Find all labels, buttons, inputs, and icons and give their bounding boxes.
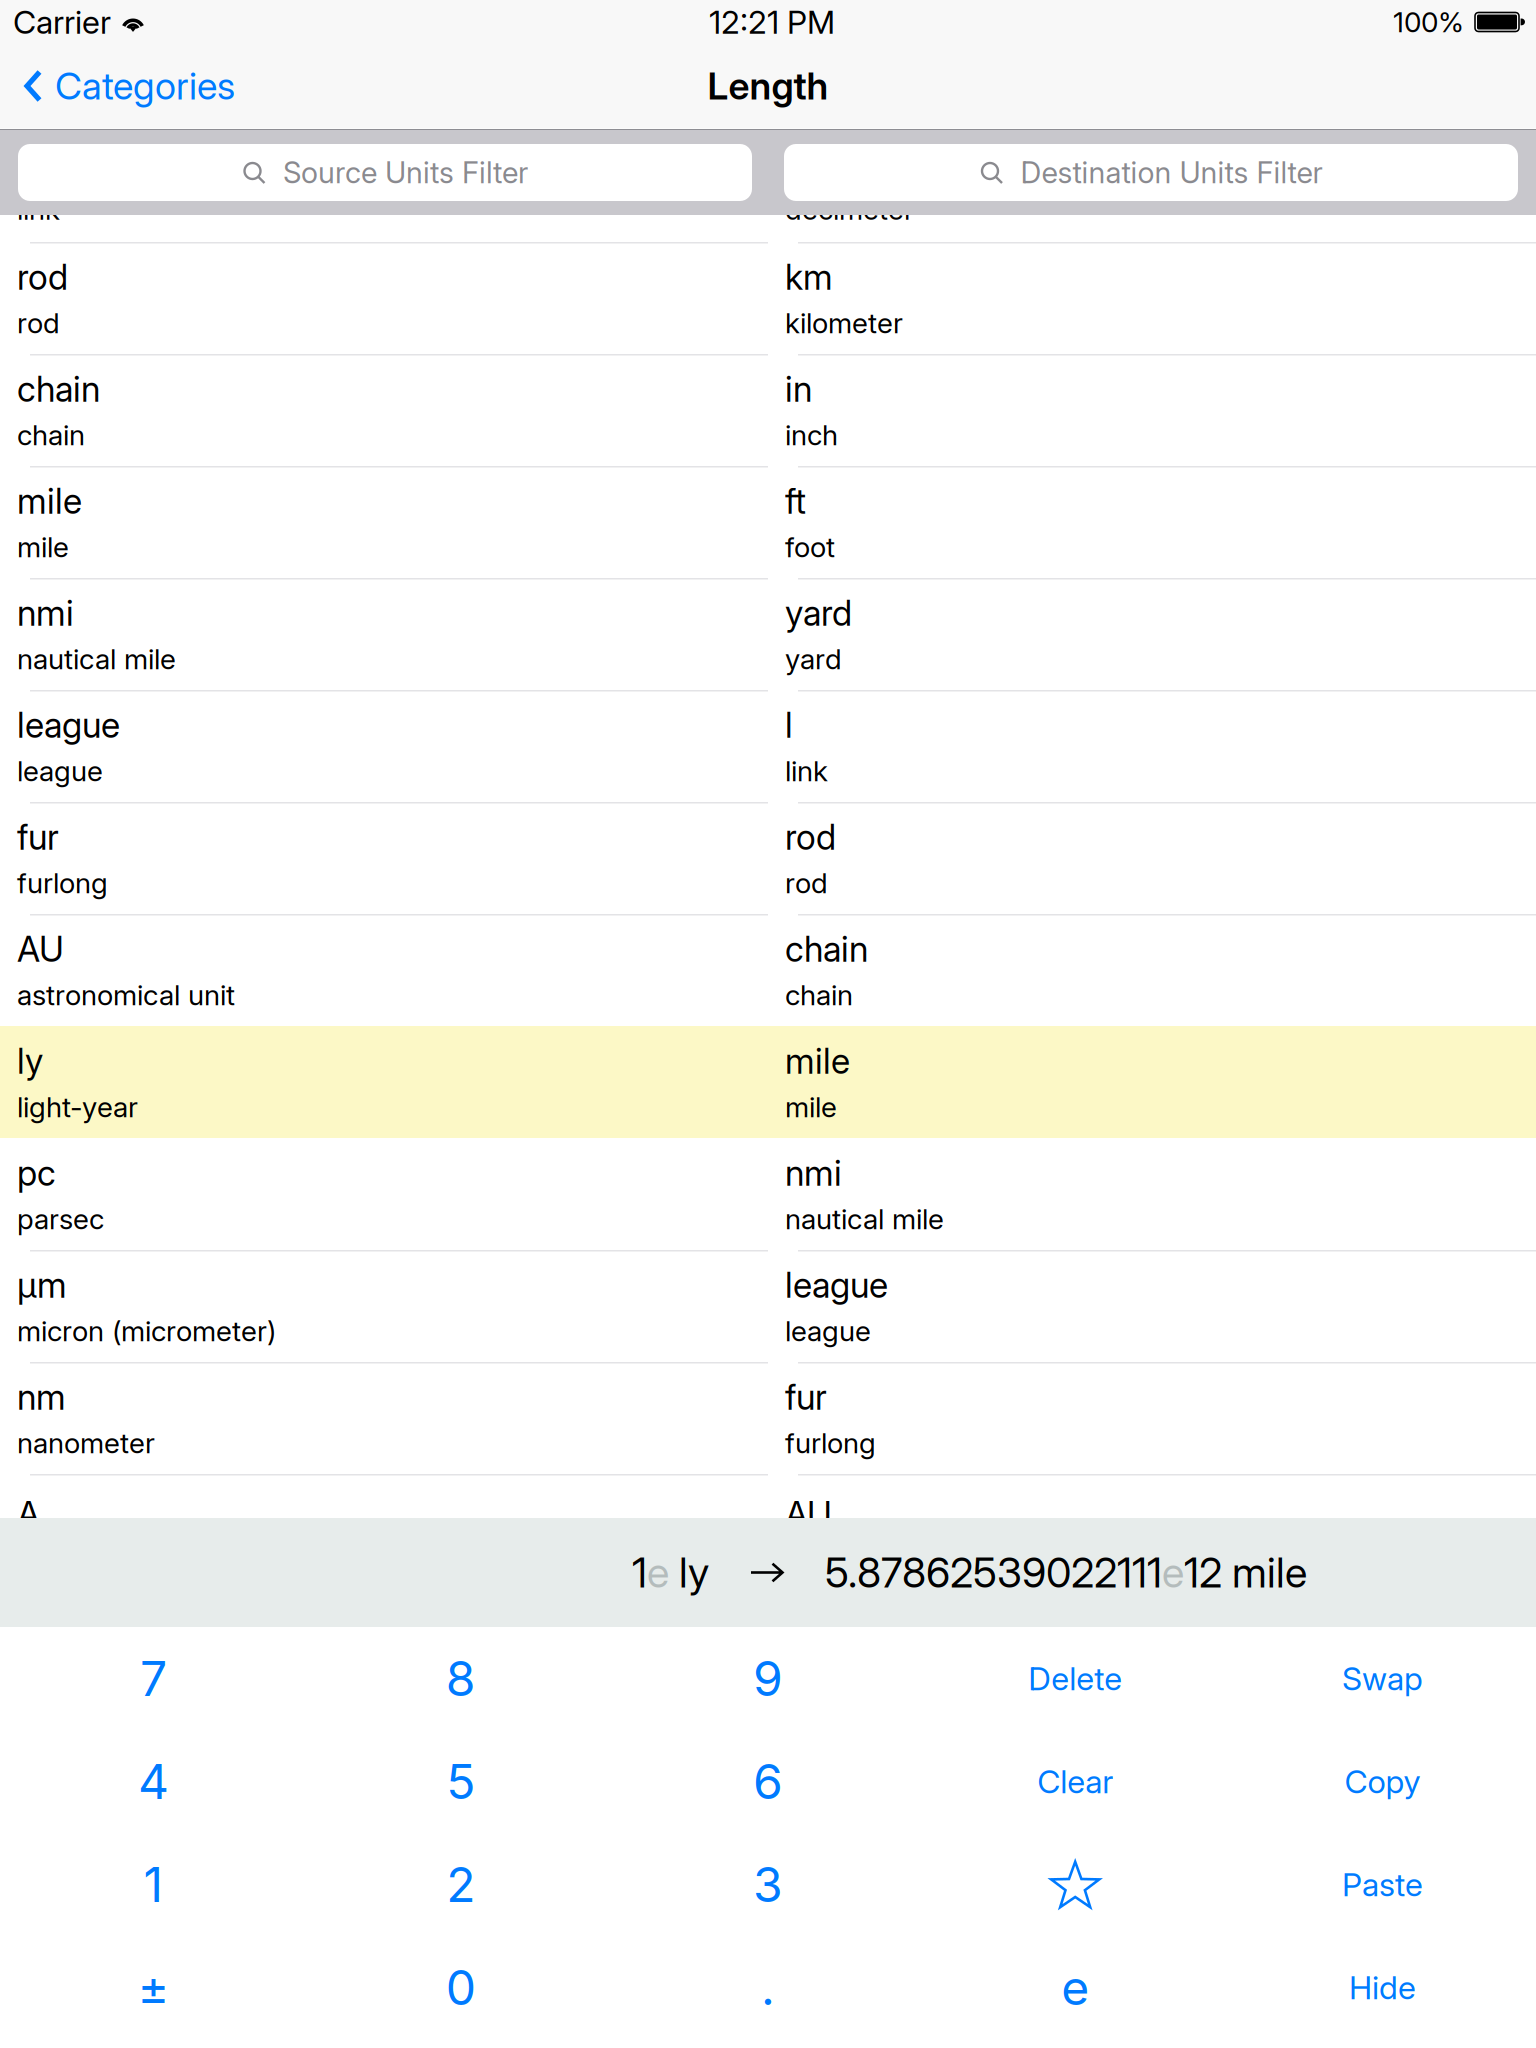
staticText: e: [1162, 1547, 1184, 1597]
button[interactable]: chain: [0, 354, 768, 466]
button[interactable]: e: [922, 1936, 1229, 2039]
staticText: .: [761, 1958, 775, 2017]
button[interactable]: rod: [768, 802, 1536, 914]
staticText: league: [17, 704, 120, 746]
button[interactable]: nmi: [768, 1138, 1536, 1250]
staticText: 8: [446, 1649, 476, 1708]
staticText: fur: [17, 816, 59, 858]
button[interactable]: mile: [768, 1026, 1536, 1138]
staticText: Delete: [1028, 1659, 1122, 1698]
button[interactable]: 0: [307, 1936, 614, 2039]
button[interactable]: ft: [768, 466, 1536, 578]
button[interactable]: nm: [0, 1362, 768, 1474]
staticText: 9: [753, 1649, 783, 1708]
staticText: kilometer: [785, 306, 903, 340]
staticText: inch: [785, 418, 838, 452]
button[interactable]: 5: [307, 1730, 614, 1833]
staticText: nautical mile: [785, 1202, 944, 1236]
staticText: Clear: [1037, 1762, 1113, 1801]
button[interactable]: Destination Units Filter: [784, 144, 1518, 201]
staticText: ly: [669, 1547, 709, 1597]
staticText: rod: [17, 256, 68, 298]
staticText: rod: [17, 306, 60, 340]
staticText: parsec: [17, 1202, 104, 1236]
staticText: 100%: [1393, 5, 1464, 39]
button[interactable]: .: [614, 1936, 922, 2039]
staticText: furlong: [785, 1426, 876, 1460]
staticText: ly: [17, 1040, 43, 1082]
staticText: decimeter: [785, 193, 914, 226]
button[interactable]: nmi: [0, 578, 768, 690]
button[interactable]: 8: [307, 1627, 614, 1730]
button[interactable]: Categories: [0, 44, 249, 128]
staticText: chain: [785, 928, 868, 970]
staticText: Destination Units Filter: [1020, 155, 1322, 190]
staticText: nanometer: [17, 1426, 155, 1460]
staticText: pc: [17, 1152, 56, 1194]
button[interactable]: AU: [0, 914, 768, 1026]
staticText: Hide: [1349, 1968, 1416, 2007]
button[interactable]: µm: [0, 1250, 768, 1362]
button[interactable]: 7: [0, 1627, 307, 1730]
button[interactable]: 6: [614, 1730, 922, 1833]
staticText: furlong: [17, 866, 108, 900]
button[interactable]: 1: [0, 1833, 307, 1936]
staticText: AU: [17, 928, 64, 970]
staticText: rod: [785, 866, 828, 900]
button[interactable]: Paste: [1229, 1833, 1536, 1936]
button[interactable]: fur: [768, 1362, 1536, 1474]
staticText: nmi: [785, 1152, 842, 1194]
button[interactable]: 9: [614, 1627, 922, 1730]
button[interactable]: fur: [0, 802, 768, 914]
staticText: 5: [446, 1752, 475, 1811]
staticText: link: [785, 754, 828, 788]
button[interactable]: mile: [0, 466, 768, 578]
staticText: nmi: [17, 592, 74, 634]
staticText: Paste: [1342, 1865, 1423, 1904]
button[interactable]: yard: [768, 578, 1536, 690]
staticText: yard: [785, 642, 842, 676]
button[interactable]: Hide: [1229, 1936, 1536, 2039]
button[interactable]: Favorite: [922, 1833, 1229, 1936]
button[interactable]: 2: [307, 1833, 614, 1936]
staticText: Length: [707, 63, 828, 109]
button[interactable]: chain: [768, 914, 1536, 1026]
staticText: league: [17, 754, 103, 788]
staticText: mile: [17, 480, 82, 522]
staticText: 3: [753, 1855, 783, 1914]
staticText: nautical mile: [17, 642, 176, 676]
staticText: e: [1061, 1958, 1089, 2017]
button[interactable]: Swap: [1229, 1627, 1536, 1730]
staticText: Swap: [1342, 1659, 1423, 1698]
button[interactable]: Source Units Filter: [18, 144, 752, 201]
staticText: yard: [785, 592, 852, 634]
staticText: 5.87862539022111: [825, 1547, 1162, 1597]
button[interactable]: league: [0, 690, 768, 802]
staticText: chain: [17, 418, 85, 452]
staticText: km: [785, 256, 833, 298]
button[interactable]: 4: [0, 1730, 307, 1833]
staticText: link: [17, 193, 60, 226]
staticText: foot: [785, 530, 835, 564]
button[interactable]: l: [768, 690, 1536, 802]
button[interactable]: league: [768, 1250, 1536, 1362]
staticText: league: [785, 1264, 888, 1306]
staticText: chain: [17, 368, 100, 410]
button[interactable]: in: [768, 354, 1536, 466]
staticText: astronomical unit: [17, 978, 235, 1012]
staticText: Categories: [55, 63, 235, 109]
button[interactable]: rod: [0, 242, 768, 354]
staticText: Carrier: [13, 3, 111, 41]
button[interactable]: Clear: [922, 1730, 1229, 1833]
button[interactable]: Copy: [1229, 1730, 1536, 1833]
button[interactable]: 3: [614, 1833, 922, 1936]
staticText: mile: [785, 1090, 837, 1124]
button[interactable]: ±: [0, 1936, 307, 2039]
staticText: A: [17, 1493, 40, 1535]
button[interactable]: pc: [0, 1138, 768, 1250]
staticText: 1: [632, 1547, 647, 1597]
button[interactable]: ly: [0, 1026, 768, 1138]
staticText: 12:21 PM: [709, 3, 835, 41]
button[interactable]: Delete: [922, 1627, 1229, 1730]
button[interactable]: km: [768, 242, 1536, 354]
